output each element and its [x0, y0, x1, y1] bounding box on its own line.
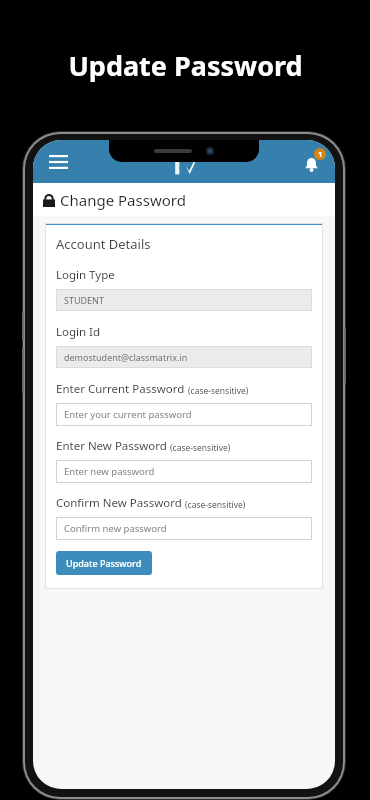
staticText: Login Id — [56, 324, 101, 340]
staticText: Enter your current password — [64, 408, 192, 421]
staticText: STUDENT — [64, 294, 104, 306]
staticText: (case-sensitive) — [188, 385, 249, 397]
staticText: Confirm new password — [64, 522, 167, 535]
staticText: Enter Current Password — [56, 381, 185, 397]
button[interactable]: Confirm new password — [56, 517, 312, 540]
button[interactable]: STUDENT — [56, 289, 312, 311]
staticText: Change Password — [60, 190, 186, 210]
button[interactable]: Menu — [43, 147, 73, 177]
staticText: Enter new password — [64, 465, 155, 478]
staticText: Login Type — [56, 267, 115, 283]
staticText: Confirm New Password — [56, 495, 182, 511]
button[interactable]: demostudent@classmatrix.in — [56, 346, 312, 368]
button[interactable]: Enter new password — [56, 460, 312, 483]
staticText: demostudent@classmatrix.in — [64, 351, 188, 363]
button[interactable]: Update Password — [56, 551, 152, 575]
staticText: (case-sensitive) — [170, 442, 231, 454]
staticText: Account Details — [56, 235, 151, 253]
button[interactable]: Notifications — [295, 146, 327, 178]
staticText: Update Password — [66, 557, 142, 569]
staticText: Enter New Password — [56, 438, 167, 454]
staticText: 1 — [318, 149, 323, 159]
button[interactable]: Enter your current password — [56, 403, 312, 426]
staticText: (case-sensitive) — [185, 499, 246, 511]
staticText: Update Password — [68, 47, 303, 84]
